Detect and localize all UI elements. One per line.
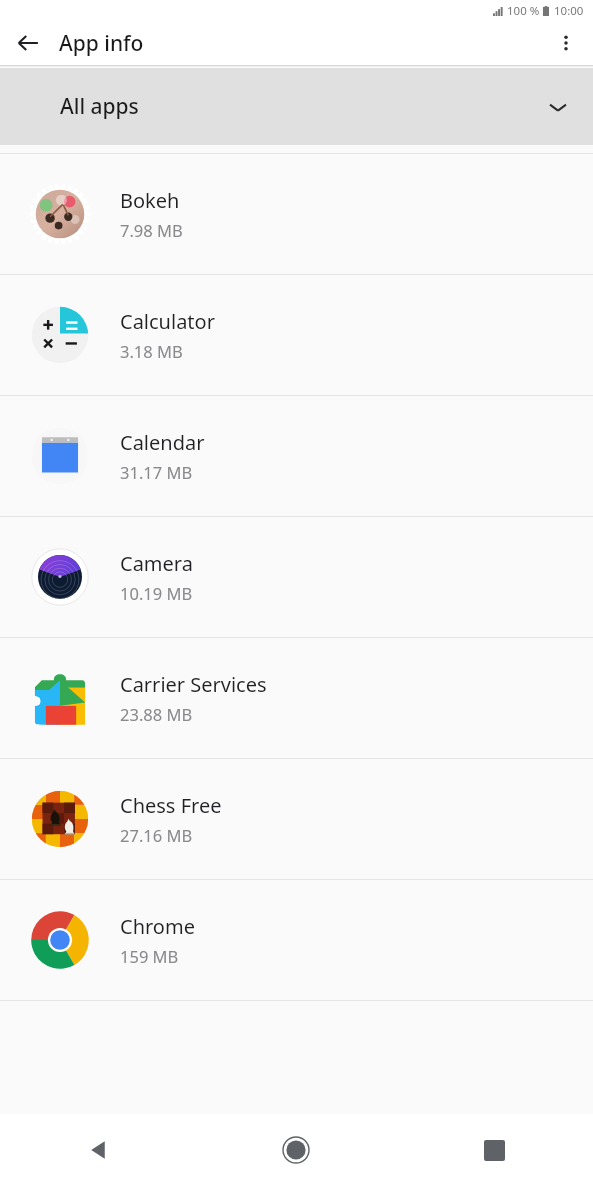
staticText: Camera: [120, 550, 193, 577]
button[interactable]: Carrier Services: [0, 638, 593, 758]
button[interactable]: Chrome: [0, 880, 593, 1000]
staticText: Calculator: [120, 308, 215, 335]
staticText: 100 %: [507, 3, 540, 19]
staticText: 159 MB: [120, 945, 179, 967]
staticText: 27.16 MB: [120, 824, 193, 846]
staticText: 23.88 MB: [120, 703, 193, 725]
staticText: 31.17 MB: [120, 461, 193, 483]
button[interactable]: Back: [8, 23, 48, 63]
button[interactable]: Calendar: [0, 396, 593, 516]
staticText: App info: [59, 29, 144, 58]
staticText: Chess Free: [120, 792, 222, 819]
staticText: Bokeh: [120, 187, 180, 214]
button[interactable]: Back: [0, 1114, 197, 1186]
button[interactable]: Calculator: [0, 275, 593, 395]
button[interactable]: More options: [546, 23, 586, 63]
button[interactable]: Camera: [0, 517, 593, 637]
staticText: 10:00: [554, 3, 584, 19]
staticText: All apps: [60, 92, 139, 121]
staticText: 7.98 MB: [120, 219, 183, 241]
staticText: Calendar: [120, 429, 205, 456]
button[interactable]: Bokeh: [0, 154, 593, 274]
button[interactable]: Home: [197, 1114, 395, 1186]
staticText: 10.19 MB: [120, 582, 193, 604]
button[interactable]: All apps: [0, 68, 593, 145]
staticText: 3.18 MB: [120, 340, 183, 362]
button[interactable]: Chess Free: [0, 759, 593, 879]
button[interactable]: Recent apps: [395, 1114, 593, 1186]
staticText: Chrome: [120, 913, 195, 940]
staticText: Carrier Services: [120, 671, 267, 698]
